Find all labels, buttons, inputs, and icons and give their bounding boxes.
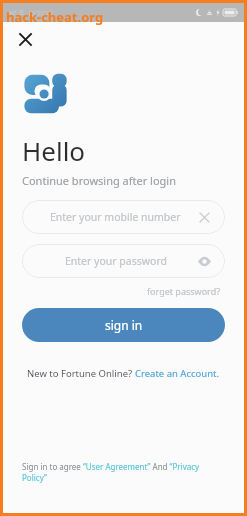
staticText: Continue browsing after login — [22, 173, 176, 188]
staticText: 46ᴱ ☰ □□:□□ — [8, 9, 53, 17]
staticText: Enter your password — [65, 254, 167, 268]
staticText: New to Fortune Online? — [27, 367, 135, 380]
staticText: Create an Account. — [135, 367, 220, 380]
staticText: Enter your mobile number — [50, 210, 181, 224]
button[interactable]: Close — [11, 25, 39, 53]
button[interactable]: Show password — [195, 252, 213, 270]
button[interactable]: Enter your password — [22, 244, 225, 278]
button[interactable]: Sign in to agree “User Agreement” And “P… — [22, 461, 225, 483]
button[interactable]: forget password? — [143, 281, 225, 301]
button[interactable]: Clear text — [195, 208, 213, 226]
button[interactable]: Enter your mobile number — [22, 200, 225, 234]
staticText: Sign in to agree “User Agreement” And “P… — [22, 461, 225, 483]
staticText: sign in — [105, 317, 143, 333]
button[interactable]: Create an Account. — [135, 367, 220, 380]
staticText: Hello — [22, 133, 86, 168]
staticText: hack-cheat.org — [6, 8, 104, 26]
staticText: forget password? — [147, 285, 221, 297]
button[interactable]: sign in — [22, 308, 225, 342]
